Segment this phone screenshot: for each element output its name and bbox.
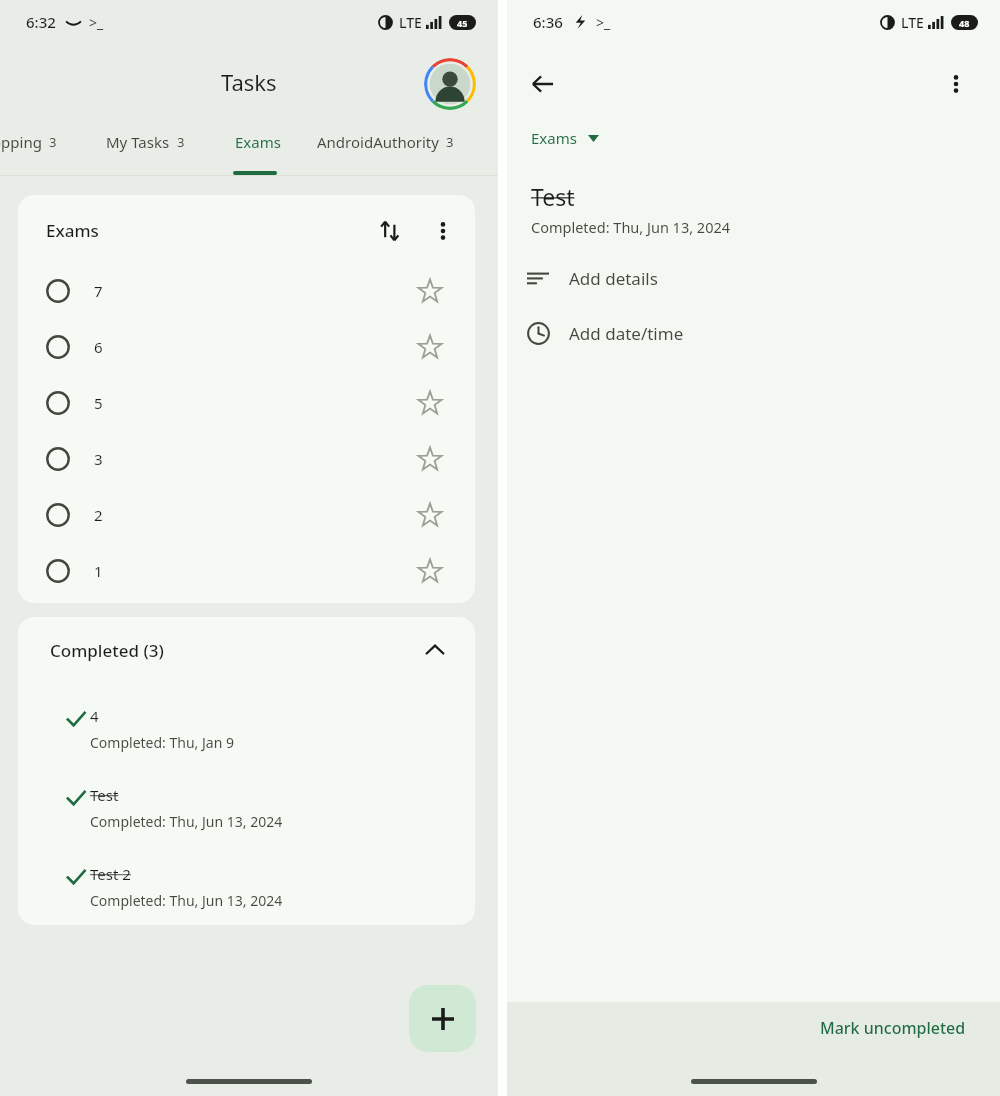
staticText: 45 [457,17,468,29]
button[interactable]: My Tasks [102,126,189,158]
staticText: 7 [94,281,103,301]
staticText: 2 [94,505,103,525]
staticText: Add date/time [569,322,684,345]
staticText: 3 [446,133,454,151]
staticText: Completed: Thu, Jun 13, 2024 [90,891,283,910]
button[interactable]: Star task [409,550,451,592]
staticText: 1 [94,561,103,581]
staticText: Mark uncompleted [820,1017,966,1039]
button[interactable]: Completed (3) [18,617,475,683]
button[interactable]: 7 [18,263,475,319]
button[interactable]: Sort [368,209,412,253]
staticText: 48 [959,17,970,29]
button[interactable]: Add details [507,252,1000,304]
button[interactable]: Star task [409,326,451,368]
staticText: Completed: Thu, Jun 13, 2024 [90,812,283,831]
button[interactable]: More options [421,209,465,253]
staticText: My Tasks [106,132,170,152]
button[interactable]: 2 [18,487,475,543]
button[interactable]: Test [18,768,475,847]
staticText: Completed (3) [50,639,164,662]
staticText: 6:32 [26,12,56,32]
staticText: Completed: Thu, Jun 13, 2024 [531,217,731,237]
staticText: 3 [177,133,185,151]
button[interactable]: Add task [409,985,476,1052]
staticText: AndroidAuthority [317,132,439,152]
staticText: Add details [569,267,658,290]
staticText: opping [0,132,42,152]
button[interactable]: opping [0,126,61,158]
staticText: 6:36 [533,12,563,32]
staticText: Tasks [221,67,277,97]
staticText: Exams [531,128,577,148]
button[interactable]: Add date/time [507,307,1000,359]
button[interactable]: AndroidAuthority [313,126,458,158]
staticText: 3 [49,133,57,151]
staticText: Exams [46,219,99,242]
button[interactable]: Test 2 [18,847,475,925]
button[interactable]: More options [934,62,978,106]
button[interactable]: Test [531,181,575,212]
staticText: LTE [399,13,422,32]
staticText: Exams [235,132,281,152]
button[interactable]: 3 [18,431,475,487]
button[interactable]: Account [424,58,476,110]
staticText: Completed: Thu, Jan 9 [90,733,234,752]
button[interactable]: Star task [409,438,451,480]
staticText: Test [90,785,119,805]
staticText: LTE [901,13,924,32]
staticText: Test 2 [90,864,131,884]
button[interactable]: 1 [18,543,475,599]
staticText: 3 [94,449,103,469]
button[interactable]: Star task [409,494,451,536]
staticText: >_ [596,13,611,32]
button[interactable]: Star task [409,270,451,312]
button[interactable]: 4 [18,689,475,768]
staticText: 6 [94,337,103,357]
staticText: 5 [94,393,103,413]
button[interactable]: 6 [18,319,475,375]
staticText: 4 [90,706,99,726]
button[interactable]: 5 [18,375,475,431]
button[interactable]: Exams [231,126,285,158]
staticText: >_ [89,13,104,32]
button[interactable]: Mark uncompleted [806,1008,980,1048]
button[interactable]: Star task [409,382,451,424]
button[interactable]: Exams [525,122,605,154]
button[interactable]: Back [519,60,567,108]
